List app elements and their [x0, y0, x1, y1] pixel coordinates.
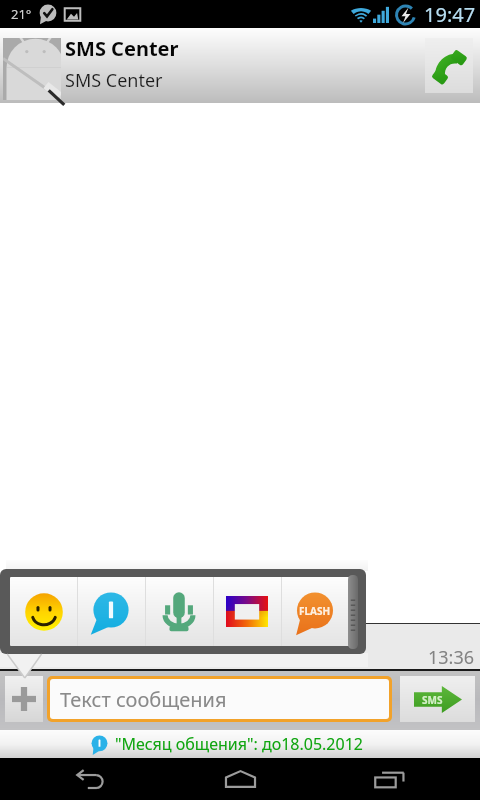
button[interactable]: Home: [200, 758, 280, 800]
staticText: "Месяц общения": до18.05.2012: [115, 733, 363, 755]
button[interactable]: Flash: [281, 577, 349, 646]
button[interactable]: Message: [77, 577, 145, 646]
staticText: SMS Center: [65, 68, 163, 93]
staticText: 13:36: [428, 645, 475, 670]
staticText: Текст сообщения: [60, 686, 227, 713]
staticText: SMS Center: [65, 35, 179, 62]
staticText: FLASH: [299, 604, 331, 618]
staticText: SMS: [422, 693, 443, 707]
button[interactable]: "Месяц общения": до18.05.2012: [0, 730, 480, 758]
button[interactable]: Voice: [145, 577, 213, 646]
staticText: 21°: [11, 5, 32, 23]
button[interactable]: Back: [51, 758, 131, 800]
button[interactable]: Add attachment: [5, 676, 43, 722]
button[interactable]: Picture: [213, 577, 281, 646]
button[interactable]: Send SMS: [400, 676, 475, 722]
button[interactable]: Текст сообщения: [50, 679, 389, 719]
staticText: 19:47: [424, 1, 476, 28]
button[interactable]: Smiley: [10, 577, 77, 646]
button[interactable]: Recent apps: [349, 758, 429, 800]
button[interactable]: Call: [425, 38, 473, 93]
